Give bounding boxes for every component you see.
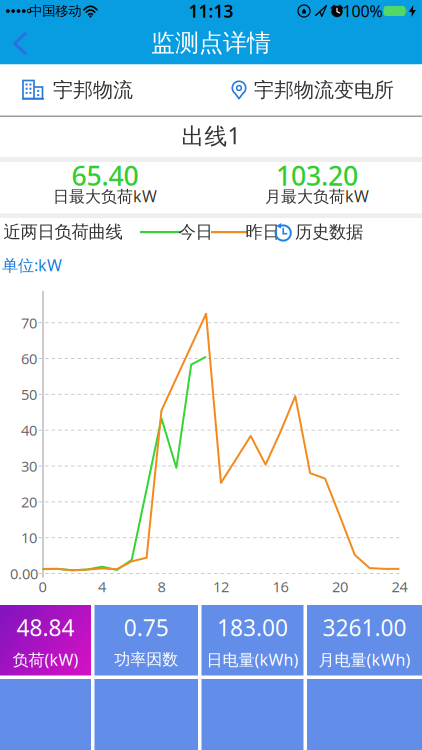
staticText: 65.40: [71, 158, 138, 193]
staticText: 出线1: [181, 120, 240, 150]
staticText: 宇邦物流变电所: [254, 78, 394, 102]
staticText: 100%: [342, 0, 382, 22]
staticText: 40: [21, 420, 37, 440]
staticText: 历史数据: [295, 221, 363, 243]
staticText: 24: [391, 577, 407, 596]
staticText: 0.75: [124, 612, 169, 642]
staticText: 日最大负荷kW: [53, 185, 157, 207]
button[interactable]: 历史数据: [271, 218, 365, 246]
staticText: 30: [21, 456, 37, 476]
staticText: 70: [21, 313, 37, 332]
staticText: 16: [272, 577, 288, 596]
staticText: 月电量(kWh): [318, 649, 410, 670]
button[interactable]: 3261.00: [307, 605, 422, 675]
staticText: 11:13: [188, 0, 233, 22]
staticText: 功率因数: [114, 650, 178, 669]
staticText: 0.00: [10, 564, 38, 583]
staticText: 103.20: [276, 158, 358, 193]
staticText: 48.84: [16, 612, 74, 642]
button[interactable]: 宇邦物流变电所: [211, 64, 422, 115]
staticText: 今日: [178, 221, 212, 243]
staticText: 0: [38, 577, 46, 596]
staticText: 宇邦物流: [53, 78, 133, 102]
staticText: 12: [213, 577, 229, 596]
staticText: 昨日: [245, 221, 279, 243]
staticText: 20: [21, 492, 37, 512]
staticText: 20: [332, 577, 348, 596]
button[interactable]: 返回: [12, 32, 38, 55]
staticText: 8: [157, 577, 165, 596]
button[interactable]: 183.00: [201, 605, 303, 675]
staticText: 183.00: [217, 612, 288, 642]
staticText: 单位:kW: [2, 254, 62, 276]
button[interactable]: 0.75: [94, 605, 198, 675]
staticText: 近两日负荷曲线: [3, 221, 122, 243]
staticText: 负荷(kW): [12, 649, 78, 670]
staticText: 监测点详情: [151, 28, 271, 58]
staticText: 60: [21, 349, 37, 368]
staticText: 50: [21, 385, 37, 404]
staticText: 月最大负荷kW: [265, 185, 369, 207]
staticText: 4: [98, 577, 106, 596]
staticText: 日电量(kWh): [206, 649, 298, 670]
staticText: 3261.00: [322, 612, 406, 642]
staticText: 10: [21, 528, 37, 547]
button[interactable]: 48.84: [0, 605, 91, 675]
staticText: 中国移动: [29, 3, 81, 19]
button[interactable]: 宇邦物流: [0, 64, 211, 115]
